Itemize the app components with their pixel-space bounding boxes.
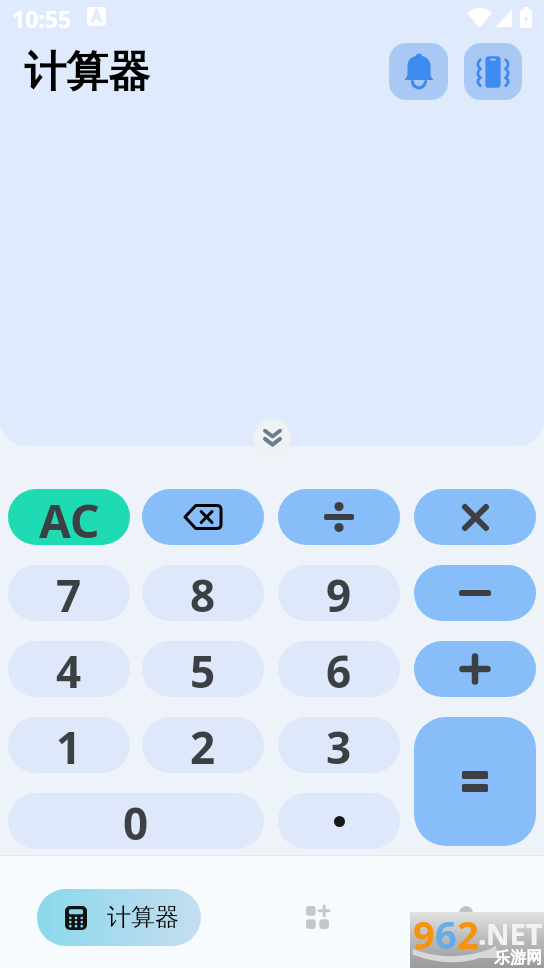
staticText: 6 bbox=[326, 641, 352, 697]
button[interactable]: 9 bbox=[278, 565, 400, 621]
staticText: 计算器 bbox=[24, 46, 150, 99]
button[interactable]: 4 bbox=[8, 641, 130, 697]
staticText: 7 bbox=[56, 565, 82, 621]
button[interactable]: 3 bbox=[278, 717, 400, 773]
staticText: 2 bbox=[457, 908, 479, 960]
staticText: . bbox=[478, 913, 487, 954]
button[interactable] bbox=[442, 890, 490, 938]
staticText: 乐游网 bbox=[494, 948, 542, 968]
staticText: 9 bbox=[326, 565, 352, 621]
staticText: 计算器 bbox=[107, 902, 179, 932]
button[interactable] bbox=[414, 641, 536, 697]
button[interactable] bbox=[389, 43, 448, 100]
button[interactable] bbox=[253, 419, 291, 457]
staticText: 1 bbox=[56, 717, 82, 773]
button[interactable]: 8 bbox=[142, 565, 264, 621]
button[interactable]: 6 bbox=[278, 641, 400, 697]
staticText: 0 bbox=[123, 793, 149, 849]
button[interactable] bbox=[278, 489, 400, 545]
staticText: 6 bbox=[435, 908, 457, 960]
button[interactable]: 5 bbox=[142, 641, 264, 697]
staticText: 3 bbox=[326, 717, 352, 773]
button[interactable] bbox=[278, 793, 400, 849]
staticText: 9 bbox=[413, 908, 435, 960]
button[interactable] bbox=[414, 489, 536, 545]
staticText: 10:55 bbox=[12, 3, 72, 34]
button[interactable]: 0 bbox=[8, 793, 264, 849]
button[interactable] bbox=[414, 565, 536, 621]
button[interactable]: AC bbox=[8, 489, 130, 545]
staticText: 4 bbox=[56, 641, 82, 697]
button[interactable] bbox=[464, 43, 522, 100]
button[interactable]: 1 bbox=[8, 717, 130, 773]
button[interactable]: 计算器 bbox=[37, 889, 201, 946]
button[interactable] bbox=[293, 893, 341, 941]
staticText: AC bbox=[39, 489, 100, 545]
button[interactable] bbox=[142, 489, 264, 545]
button[interactable] bbox=[414, 717, 536, 846]
button[interactable]: 2 bbox=[142, 717, 264, 773]
button[interactable]: 7 bbox=[8, 565, 130, 621]
staticText: 2 bbox=[190, 717, 216, 773]
staticText: 8 bbox=[190, 565, 216, 621]
staticText: NET bbox=[486, 914, 543, 953]
staticText: 5 bbox=[190, 641, 216, 697]
